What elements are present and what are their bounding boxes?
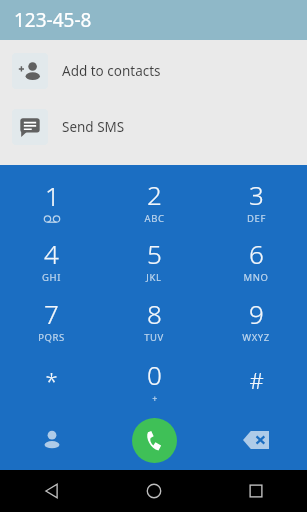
button[interactable]: 7 (0, 290, 103, 350)
button[interactable]: 6 (205, 230, 307, 290)
staticText: 0 (147, 357, 162, 392)
button[interactable]: 8 (103, 290, 205, 350)
button[interactable]: # (205, 350, 307, 410)
button[interactable]: Back (0, 470, 103, 512)
button[interactable]: 0 (103, 350, 205, 410)
staticText: + (152, 392, 158, 404)
staticText: Add to contacts (62, 62, 161, 80)
staticText: 5 (147, 236, 162, 271)
staticText: # (249, 365, 264, 395)
staticText: MNO (243, 271, 269, 284)
staticText: 6 (249, 236, 264, 271)
staticText: PQRS (38, 331, 65, 344)
button[interactable]: 5 (103, 230, 205, 290)
button[interactable]: Send SMS (0, 105, 307, 149)
staticText: DEF (247, 212, 266, 225)
staticText: 2 (147, 177, 162, 212)
button[interactable]: 3 (205, 171, 307, 230)
button[interactable]: Call (132, 418, 177, 463)
button[interactable]: Add to contacts (0, 49, 307, 93)
button[interactable]: Backspace (205, 412, 307, 468)
staticText: JKL (146, 271, 162, 284)
staticText: Send SMS (62, 118, 125, 136)
staticText: 7 (44, 296, 59, 331)
staticText: 8 (147, 296, 162, 331)
button[interactable]: Recents (205, 470, 307, 512)
button[interactable]: 9 (205, 290, 307, 350)
staticText: WXYZ (242, 331, 270, 344)
staticText: TUV (144, 331, 164, 344)
button[interactable]: Contacts (0, 412, 103, 468)
button[interactable]: * (0, 350, 103, 410)
staticText: 123-45-8 (14, 7, 92, 33)
staticText: ABC (144, 212, 165, 225)
staticText: * (45, 365, 58, 395)
staticText: 1 (45, 178, 60, 213)
staticText: 4 (44, 236, 59, 271)
button[interactable]: 4 (0, 230, 103, 290)
button[interactable]: 1 (0, 171, 103, 230)
button[interactable]: Home (103, 470, 205, 512)
staticText: GHI (42, 271, 61, 284)
button[interactable]: 123-45-8 (0, 0, 307, 40)
button[interactable]: 2 (103, 171, 205, 230)
staticText: 3 (249, 177, 264, 212)
staticText: 9 (249, 296, 264, 331)
